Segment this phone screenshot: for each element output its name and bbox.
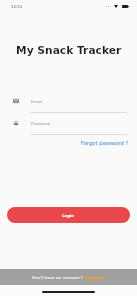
- staticText: Register: [85, 275, 105, 280]
- staticText: Email: [31, 99, 43, 104]
- button[interactable]: Login: [7, 207, 130, 223]
- staticText: Don't have an account ?: [32, 275, 85, 280]
- staticText: Password: [31, 121, 51, 126]
- staticText: 12:51: [11, 4, 23, 9]
- button[interactable]: Forgot password ?: [79, 139, 131, 147]
- button[interactable]: Email: [0, 95, 137, 107]
- button[interactable]: Password: [0, 117, 137, 129]
- staticText: My Snack Tracker: [16, 44, 122, 56]
- button[interactable]: Don't have an account ?: [0, 269, 137, 285]
- staticText: Forgot password ?: [81, 140, 129, 146]
- staticText: Login: [62, 213, 75, 218]
